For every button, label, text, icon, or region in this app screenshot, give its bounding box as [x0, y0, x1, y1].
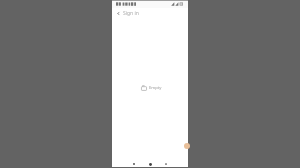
button[interactable]: Recent apps: [162, 160, 170, 168]
staticText: Sign in: [123, 10, 139, 17]
button[interactable]: Home: [146, 160, 154, 168]
button[interactable]: Navigate up: [114, 8, 123, 18]
button[interactable]: Add item: [184, 143, 190, 149]
button[interactable]: Back: [130, 160, 138, 168]
staticText: Empty: [149, 85, 162, 91]
